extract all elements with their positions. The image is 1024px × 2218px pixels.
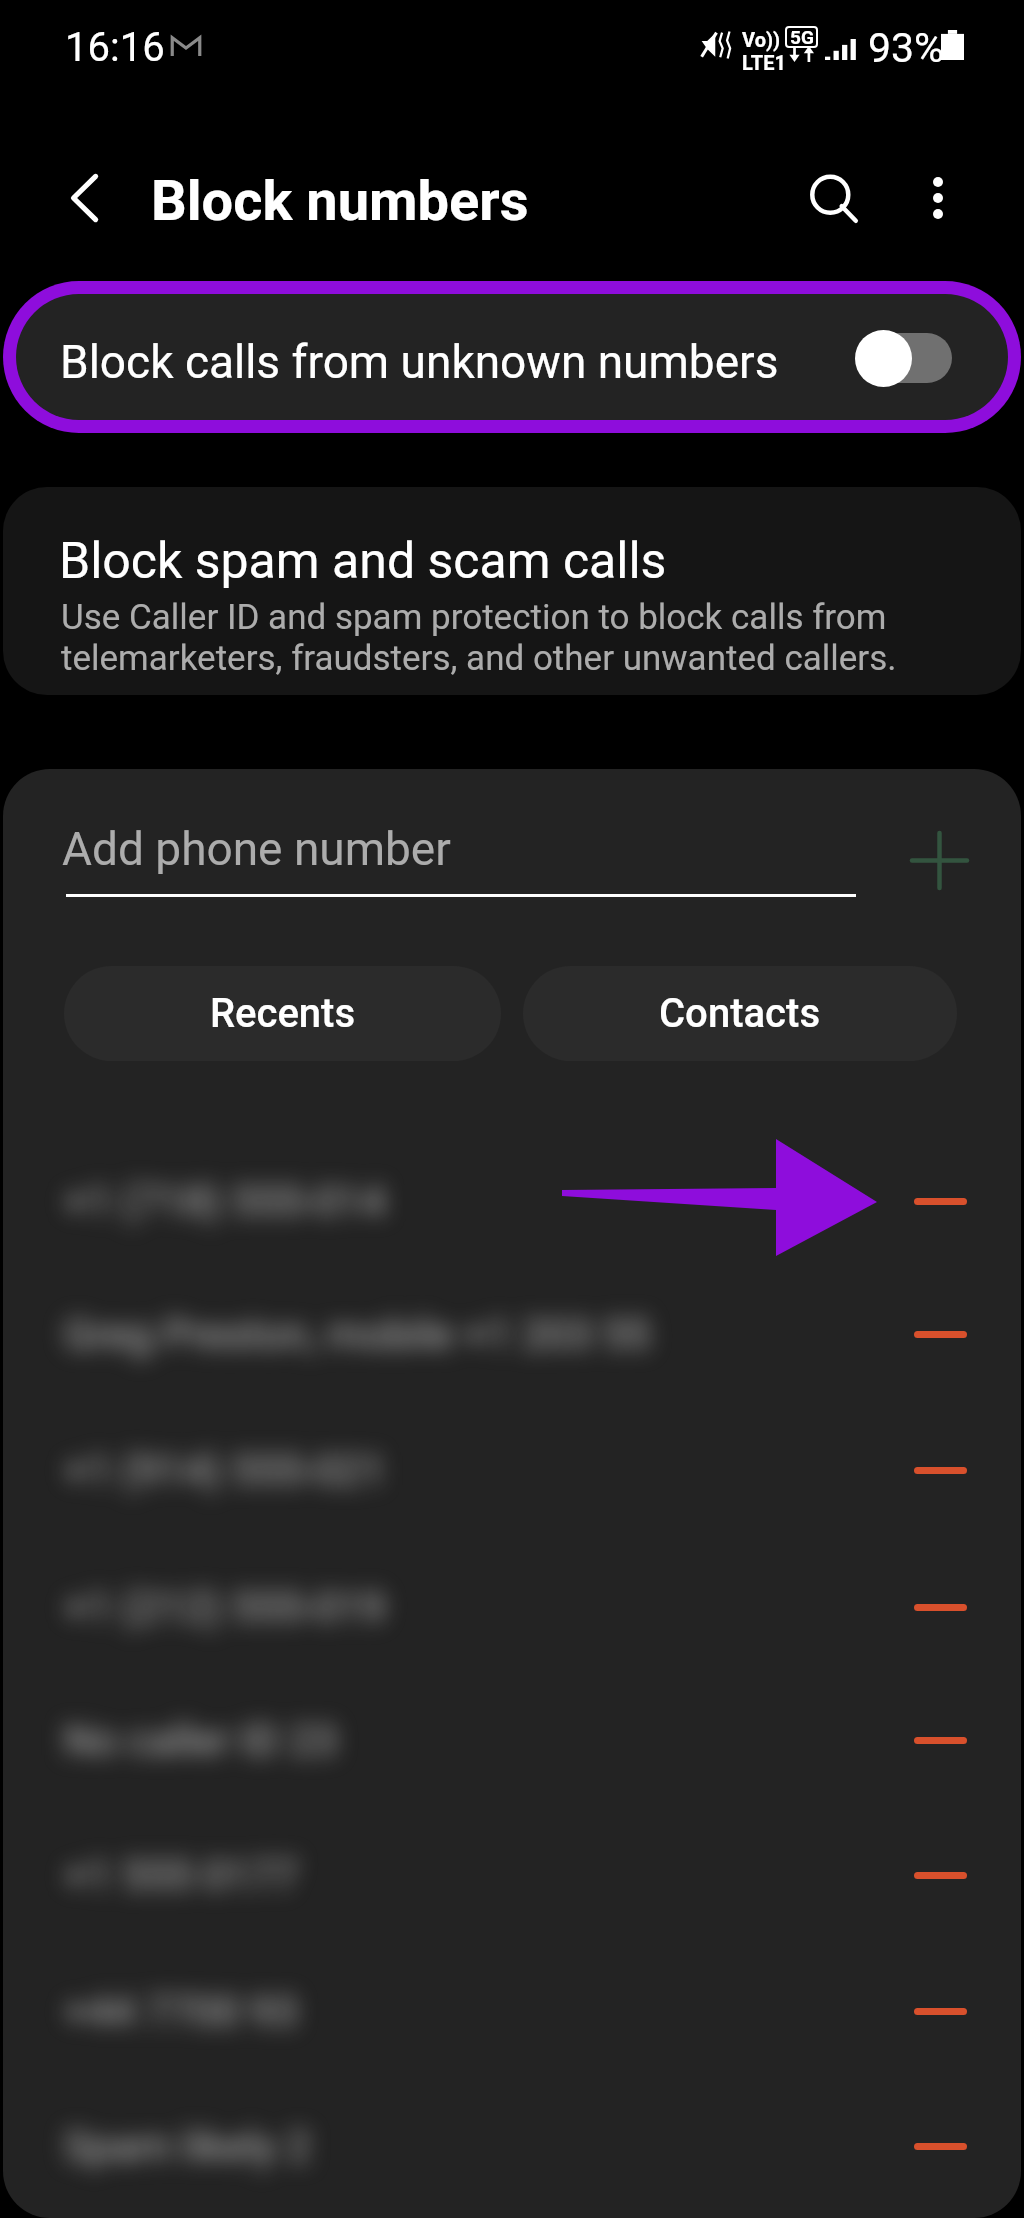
button[interactable]: Block spam and scam calls (3, 487, 1021, 695)
button[interactable]: Contacts (523, 966, 957, 1061)
staticText: 16:16 (65, 24, 165, 71)
staticText: Block spam and scam calls (59, 532, 667, 591)
staticText: 5G (790, 26, 814, 48)
staticText: 93% (868, 24, 945, 72)
button[interactable]: Remove number (888, 1835, 992, 1915)
button[interactable]: Remove number (888, 2106, 992, 2186)
staticText: Vo)) (742, 28, 781, 51)
button[interactable]: Remove number (888, 1430, 992, 1510)
staticText: Add phone number (62, 822, 451, 876)
button[interactable]: Add phone number (62, 822, 862, 876)
staticText: +1 (718) 555-014 (64, 1177, 386, 1226)
staticText: LTE1 (742, 51, 786, 74)
button[interactable]: Remove number (888, 1294, 992, 1374)
staticText: Greg Preston, mobile +1 203 55 (64, 1310, 650, 1359)
button[interactable]: Block calls from unknown numbers (16, 294, 1008, 420)
button[interactable]: Remove number (888, 1567, 992, 1647)
button[interactable]: Remove number (888, 1971, 992, 2051)
button[interactable]: Remove number (888, 1700, 992, 1780)
button[interactable]: Add number (899, 820, 979, 900)
staticText: Block numbers (151, 168, 529, 234)
staticText: +1 (212) 555-019 (64, 1583, 386, 1632)
button[interactable]: Block calls from unknown numbers (845, 326, 952, 390)
staticText: +44 7700 93 (64, 1987, 298, 2036)
staticText: Spam likely 2 (64, 2122, 311, 2171)
staticText: Recents (210, 990, 356, 1037)
staticText: Block calls from unknown numbers (60, 335, 779, 389)
button[interactable]: Remove number (888, 1161, 992, 1241)
staticText: Contacts (659, 990, 821, 1037)
staticText: +1 (914) 555-021 (64, 1446, 386, 1495)
button[interactable]: Navigate up (40, 152, 132, 244)
button[interactable]: Recents (64, 966, 501, 1061)
button[interactable]: Search (790, 155, 882, 247)
staticText: Use Caller ID and spam protection to blo… (61, 597, 897, 679)
button[interactable]: More options (892, 152, 984, 244)
staticText: No caller ID 23 (64, 1716, 338, 1765)
staticText: +1 555 0177 (64, 1851, 298, 1900)
